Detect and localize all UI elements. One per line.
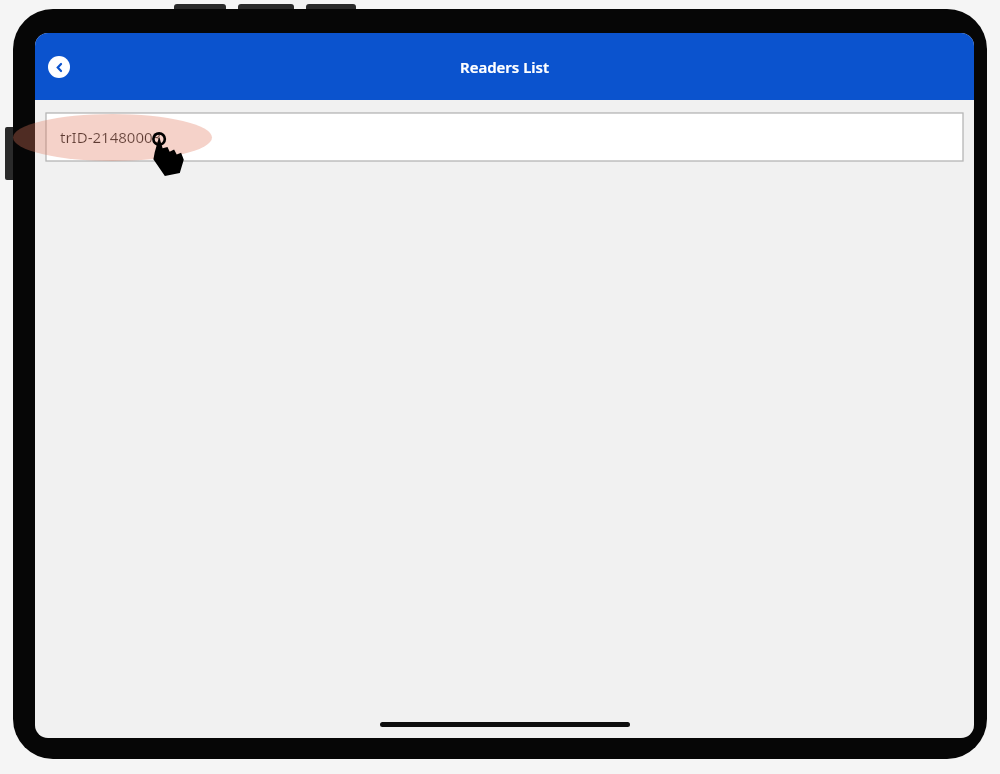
button[interactable]: Back — [48, 56, 70, 78]
staticText: Readers List — [460, 57, 550, 77]
staticText: trID-21480003 — [60, 127, 162, 147]
button[interactable]: trID-21480003 — [46, 113, 963, 161]
